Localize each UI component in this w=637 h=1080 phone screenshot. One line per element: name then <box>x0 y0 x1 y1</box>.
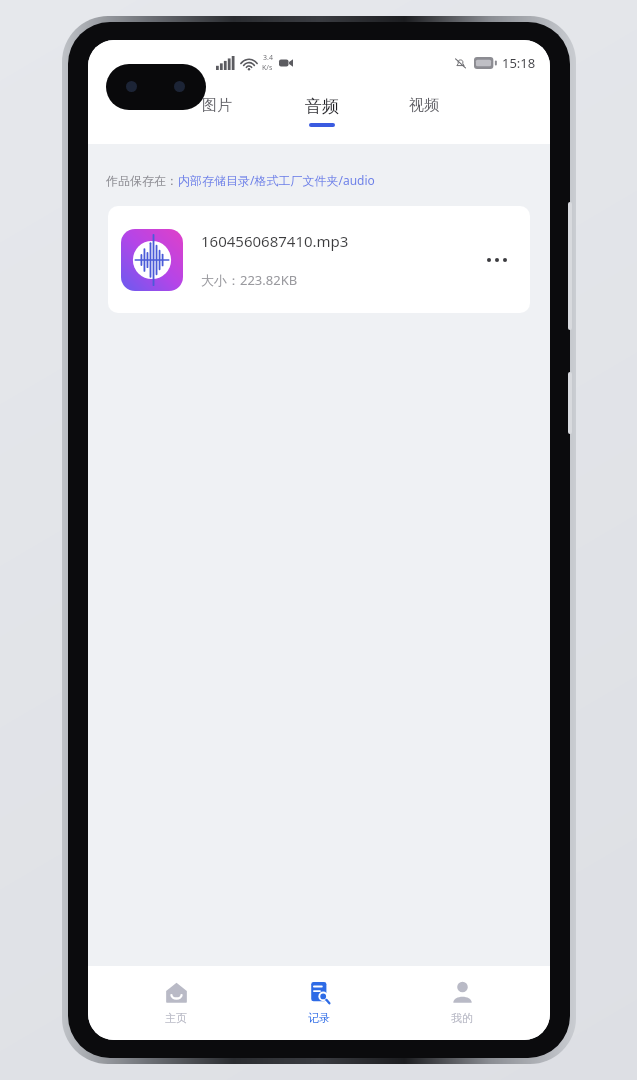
staticText: 3.4 <box>263 53 273 63</box>
staticText: 大小：223.82KB <box>201 271 298 289</box>
button[interactable]: 视频 <box>388 96 460 140</box>
staticText: 图片 <box>202 96 232 115</box>
staticText: 视频 <box>409 96 439 115</box>
button[interactable]: More options <box>477 240 517 280</box>
staticText: 内部存储目录/格式工厂文件夹/audio <box>178 172 375 188</box>
button[interactable]: 1604560687410.mp3 <box>108 206 530 313</box>
staticText: 主页 <box>165 1011 187 1025</box>
staticText: K/s <box>262 63 273 73</box>
button[interactable]: 我的 <box>407 970 517 1036</box>
button[interactable]: 图片 <box>181 96 253 140</box>
button[interactable]: 记录 <box>264 970 374 1036</box>
staticText: 我的 <box>451 1011 473 1025</box>
staticText: 15:18 <box>502 54 536 72</box>
button[interactable]: 主页 <box>121 970 231 1036</box>
button[interactable]: 音频 <box>286 96 358 140</box>
staticText: 音频 <box>305 96 339 117</box>
staticText: 1604560687410.mp3 <box>201 231 349 251</box>
staticText: 记录 <box>308 1011 330 1025</box>
staticText: 作品保存在： <box>106 173 178 188</box>
